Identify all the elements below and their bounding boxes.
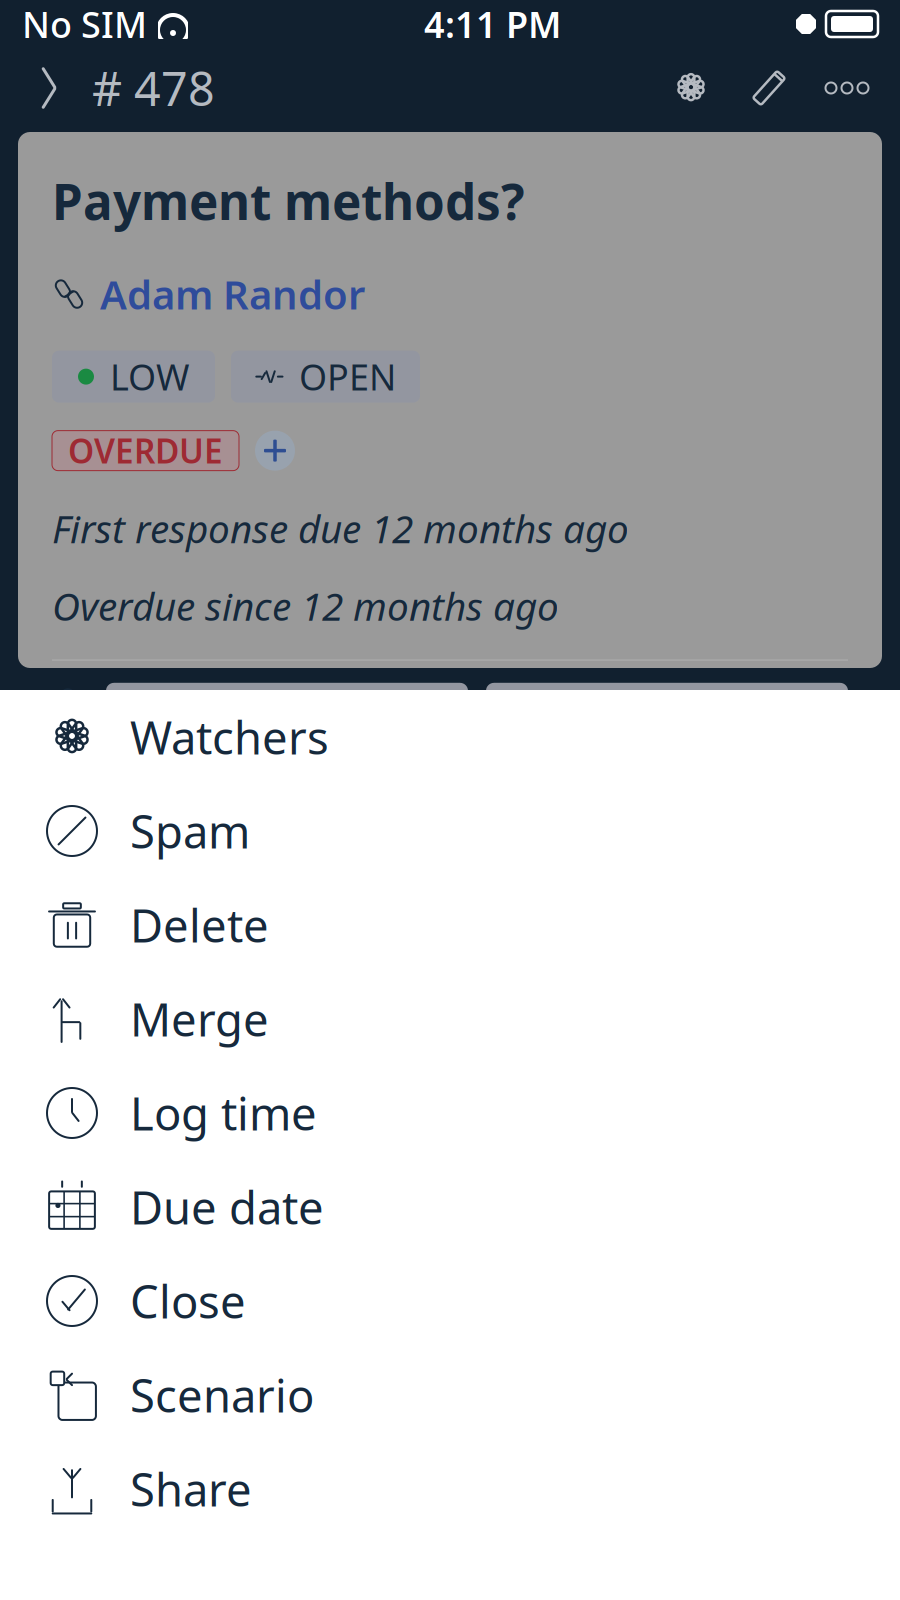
button[interactable]: More options — [808, 52, 886, 124]
staticText: Delete — [130, 895, 269, 955]
button[interactable]: Scenario — [0, 1348, 900, 1442]
staticText: Merge — [130, 989, 269, 1049]
staticText: Log time — [130, 1083, 317, 1143]
button[interactable]: Favorite — [652, 52, 730, 124]
staticText: Overdue since 12 months ago — [52, 580, 559, 631]
button[interactable]: Due date — [0, 1160, 900, 1254]
button[interactable]: Close — [0, 1254, 900, 1348]
staticText: OVERDUE — [68, 428, 223, 473]
staticText: 4:11 PM — [424, 0, 561, 48]
button[interactable]: Merge — [0, 972, 900, 1066]
staticText: Payment methods? — [52, 168, 525, 233]
button[interactable]: Watchers — [0, 690, 900, 784]
staticText: First response due 12 months ago — [52, 503, 629, 554]
staticText: LOW — [110, 353, 189, 400]
staticText: Watchers — [130, 707, 329, 767]
button[interactable]: Share — [0, 1442, 900, 1536]
staticText: -- — [656, 682, 678, 728]
button[interactable]: Log time — [0, 1066, 900, 1160]
staticText: Scenario — [130, 1365, 314, 1425]
staticText: No SIM — [22, 0, 147, 48]
staticText: OPEN — [299, 353, 396, 400]
staticText: Due date — [130, 1177, 324, 1237]
staticText: Share — [130, 1459, 252, 1519]
staticText: -- — [276, 682, 298, 728]
button[interactable]: Edit — [730, 52, 808, 124]
staticText: Adam Randor — [100, 267, 365, 321]
button[interactable]: Back — [14, 52, 84, 124]
button[interactable]: Spam — [0, 784, 900, 878]
staticText: # 478 — [92, 57, 215, 119]
button[interactable]: Delete — [0, 878, 900, 972]
staticText: Close — [130, 1271, 246, 1331]
staticText: Spam — [130, 801, 250, 861]
